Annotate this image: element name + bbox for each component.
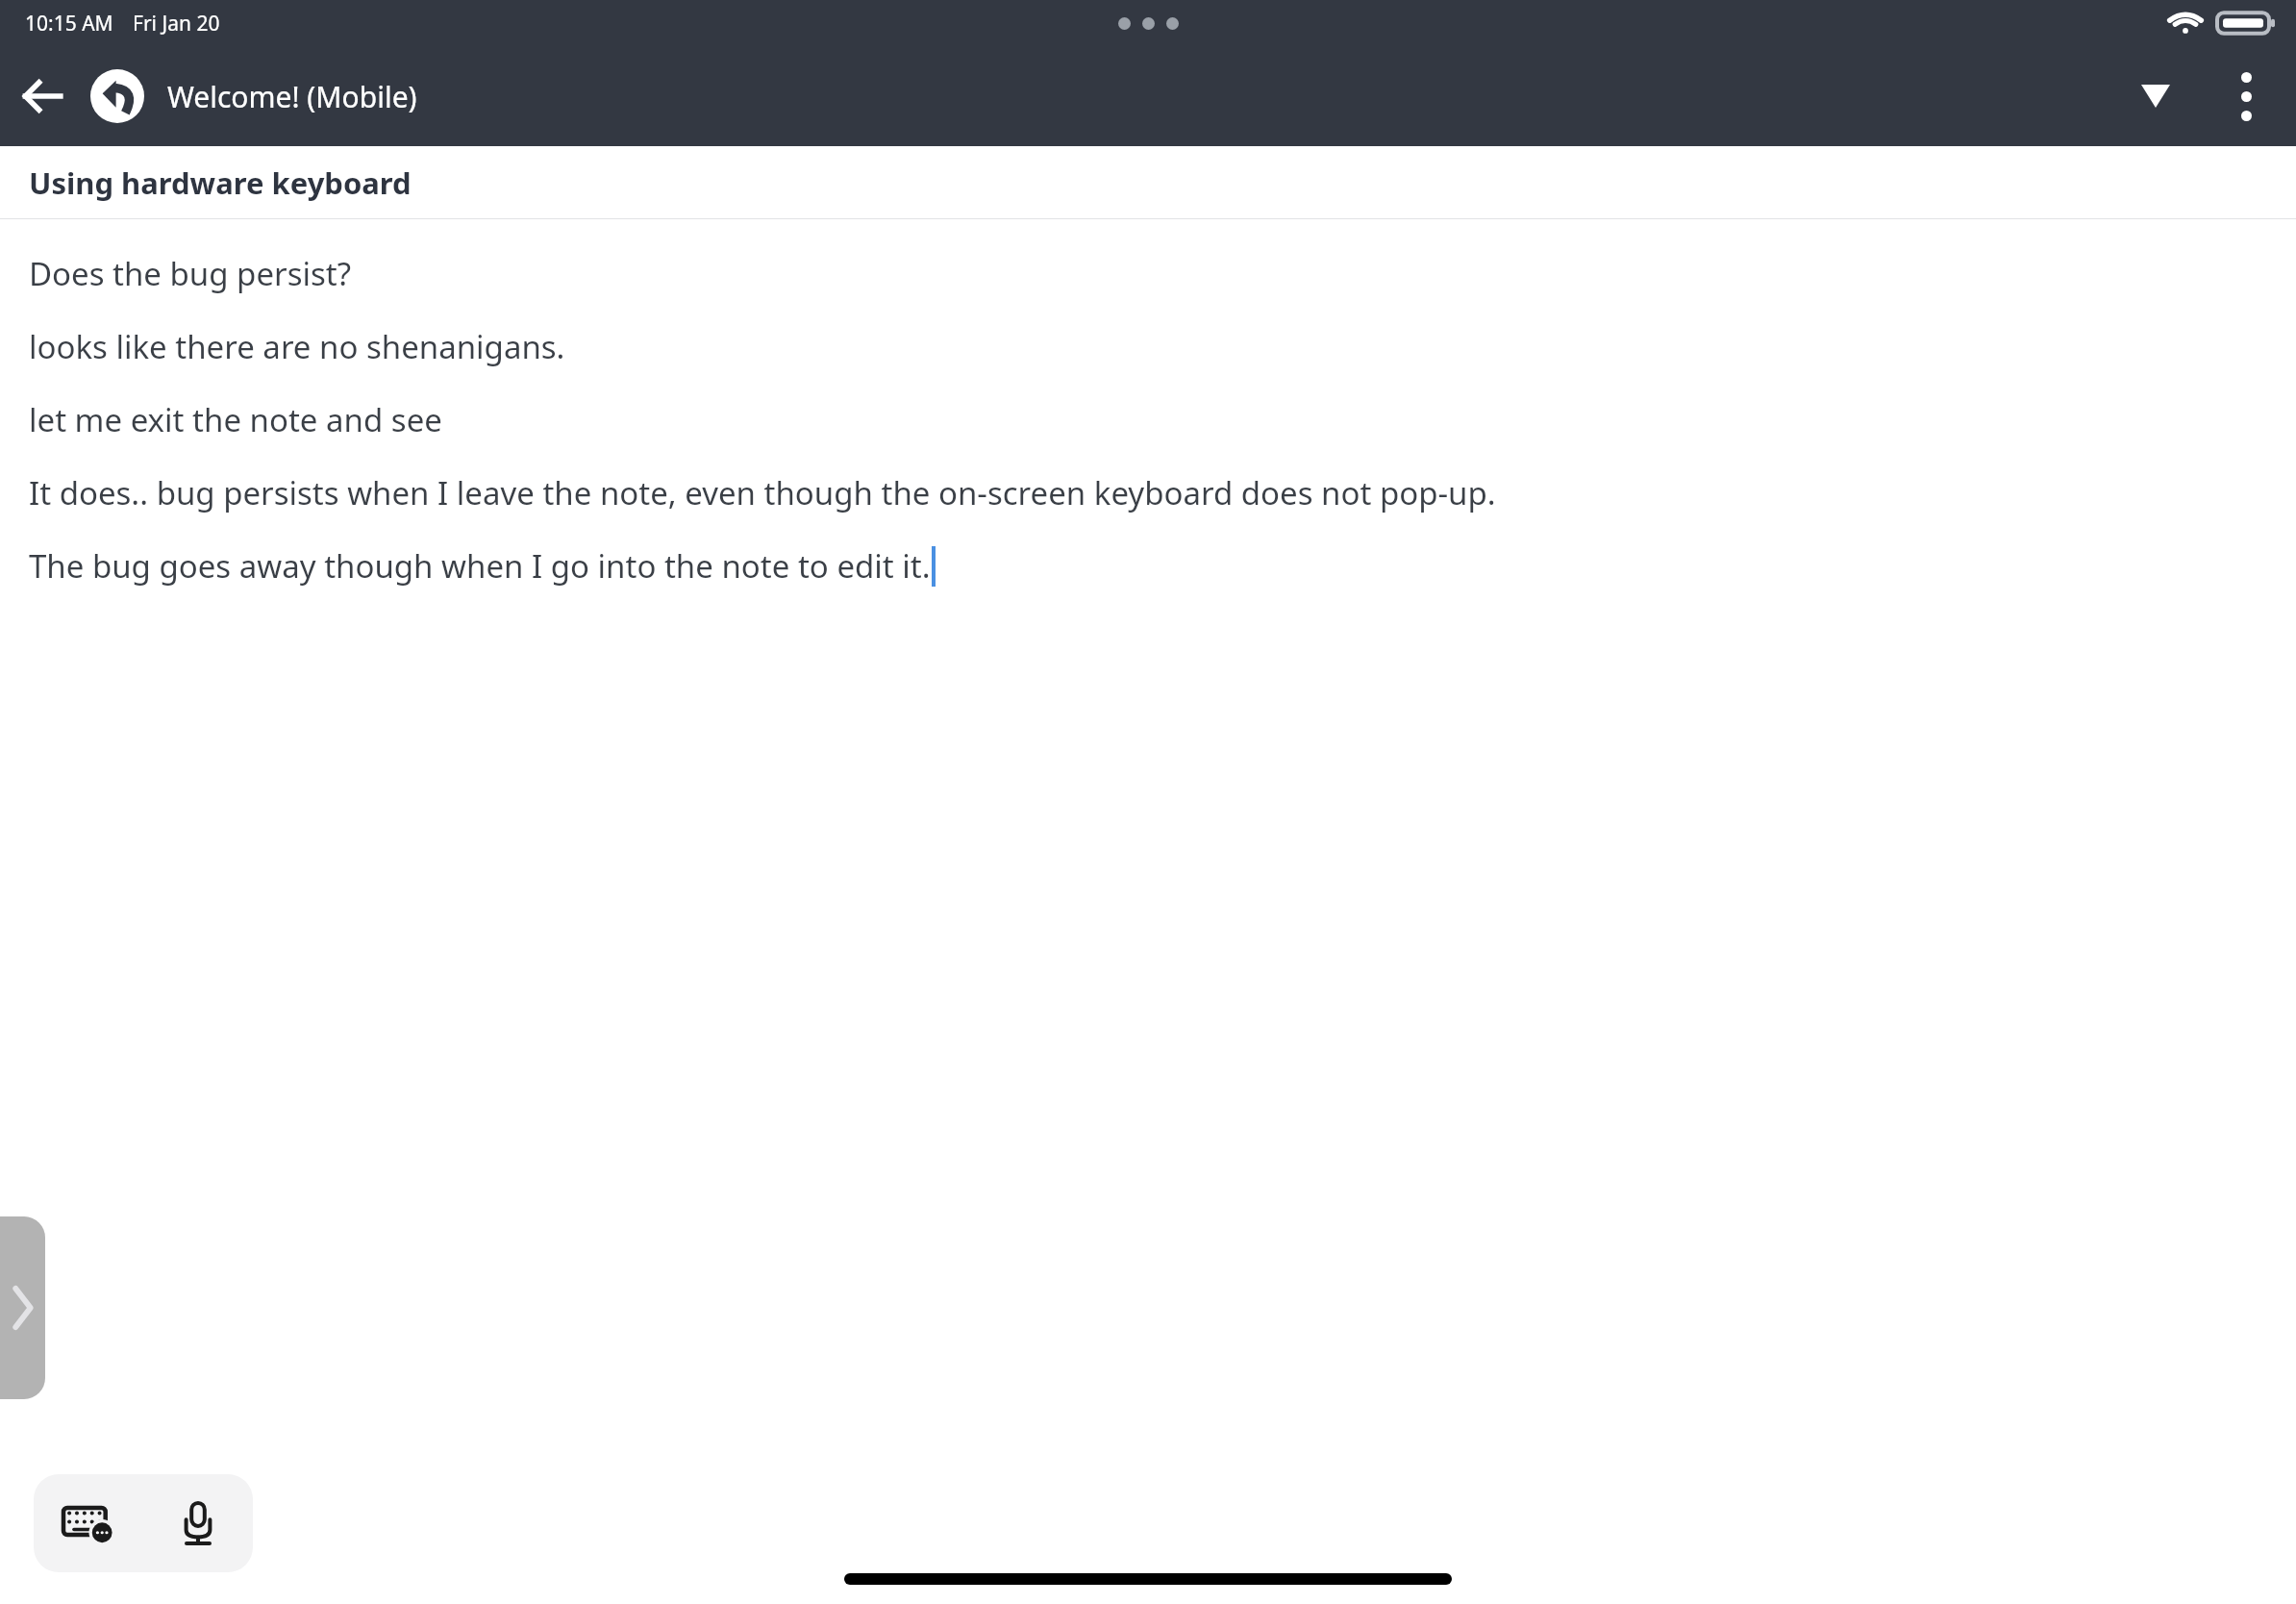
staticText: 10:15 AM bbox=[25, 10, 113, 38]
button[interactable]: Open drawer bbox=[0, 1216, 45, 1399]
button[interactable]: Voice input bbox=[143, 1474, 253, 1572]
staticText: Fri Jan 20 bbox=[133, 10, 220, 38]
staticText: The bug goes away though when I go into … bbox=[29, 544, 931, 588]
button[interactable]: Using hardware keyboard bbox=[0, 146, 2296, 218]
staticText: looks like there are no shenanigans. bbox=[29, 325, 565, 368]
button[interactable]: Keyboard options bbox=[34, 1474, 143, 1572]
staticText: Does the bug persist? bbox=[29, 252, 352, 295]
staticText: Welcome! (Mobile) bbox=[167, 77, 417, 116]
button[interactable]: Back bbox=[8, 62, 77, 131]
staticText: let me exit the note and see bbox=[29, 398, 442, 441]
button[interactable]: Expand bbox=[2121, 62, 2190, 131]
staticText: Using hardware keyboard bbox=[29, 163, 412, 203]
button[interactable]: More options bbox=[2211, 62, 2281, 131]
button[interactable]: Does the bug persist? bbox=[0, 219, 2296, 602]
staticText: It does.. bug persists when I leave the … bbox=[29, 471, 1496, 514]
button[interactable]: Undo bbox=[87, 65, 148, 127]
